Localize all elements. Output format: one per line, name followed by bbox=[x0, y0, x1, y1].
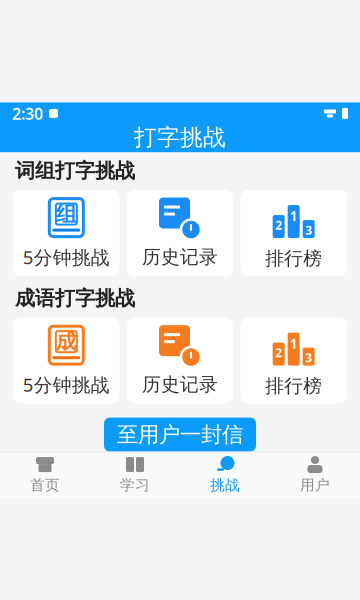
staticText: 组 bbox=[56, 201, 77, 227]
staticText: 1 bbox=[290, 335, 298, 352]
staticText: 词组打字挑战 bbox=[15, 158, 135, 183]
staticText: 排行榜 bbox=[265, 247, 322, 270]
staticText: 3 bbox=[305, 350, 312, 365]
button[interactable]: 2 bbox=[240, 190, 347, 276]
staticText: 打字挑战 bbox=[134, 123, 226, 151]
staticText: 用户 bbox=[300, 476, 330, 494]
staticText: 成 bbox=[56, 329, 77, 355]
button[interactable]: 历史记录 bbox=[127, 318, 233, 404]
staticText: 1 bbox=[290, 207, 298, 225]
staticText: 3 bbox=[305, 222, 312, 238]
staticText: 挑战 bbox=[210, 476, 240, 494]
button[interactable]: 首页 bbox=[0, 453, 90, 498]
button[interactable]: 至用户一封信 bbox=[104, 418, 256, 452]
staticText: 首页 bbox=[30, 476, 60, 494]
staticText: 学习 bbox=[120, 476, 150, 494]
staticText: 2:30 bbox=[12, 103, 43, 124]
staticText: 2 bbox=[275, 217, 282, 233]
button[interactable]: 成 bbox=[13, 318, 120, 404]
button[interactable]: 学习 bbox=[90, 453, 180, 498]
staticText: 5分钟挑战 bbox=[23, 372, 110, 397]
staticText: 2 bbox=[275, 345, 282, 360]
staticText: 历史记录 bbox=[142, 245, 218, 268]
staticText: 5分钟挑战 bbox=[23, 245, 110, 269]
staticText: 历史记录 bbox=[142, 373, 218, 396]
button[interactable]: 挑战 bbox=[180, 453, 270, 498]
button[interactable]: 用户 bbox=[270, 453, 360, 498]
staticText: 至用户一封信 bbox=[117, 421, 243, 448]
button[interactable]: 组 bbox=[13, 190, 120, 276]
staticText: 排行榜 bbox=[265, 375, 322, 397]
button[interactable]: 2 bbox=[240, 318, 347, 404]
button[interactable]: 历史记录 bbox=[127, 190, 233, 276]
staticText: 成语打字挑战 bbox=[15, 286, 135, 311]
